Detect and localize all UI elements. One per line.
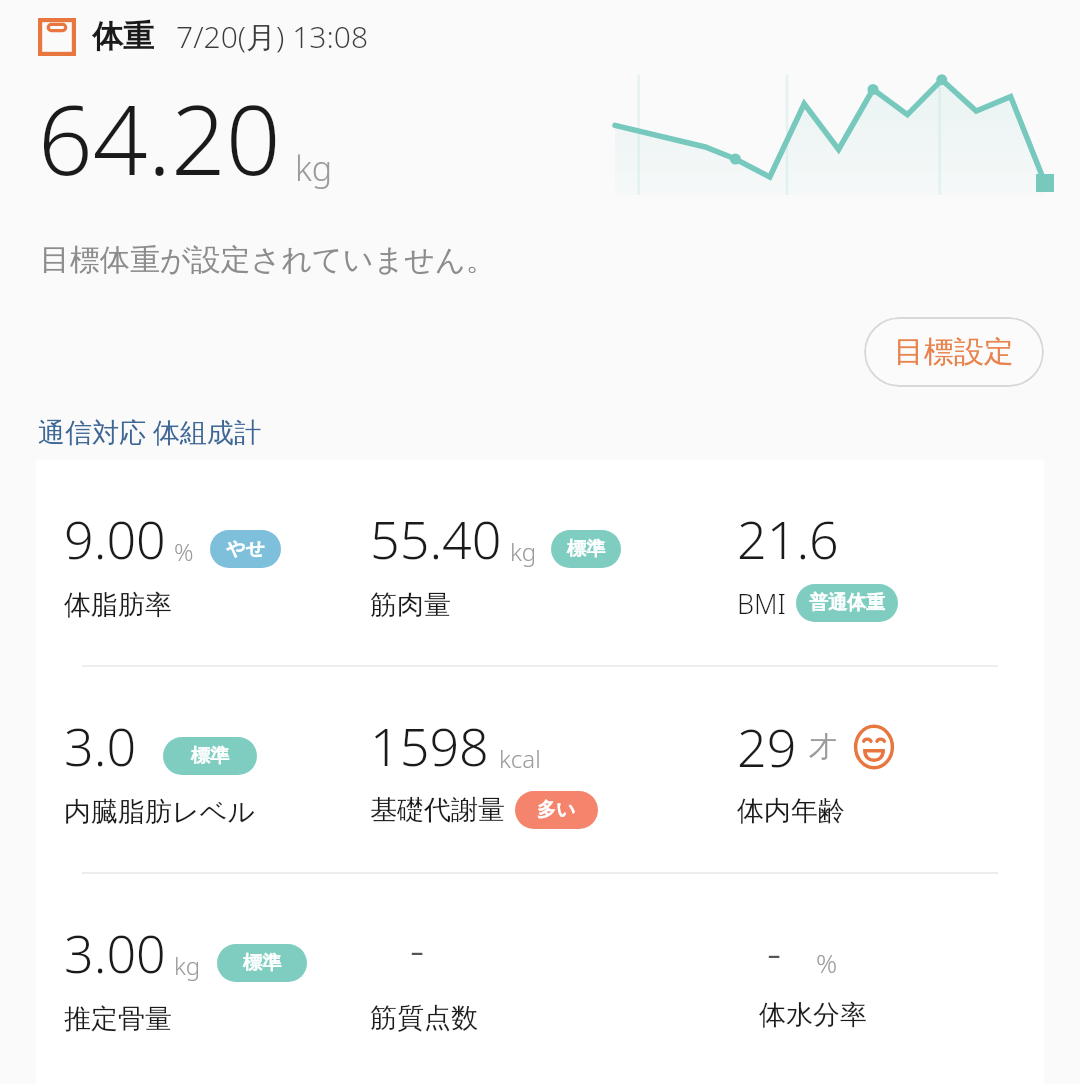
button[interactable]: 普通体重 [796, 584, 898, 622]
staticText: 9.00 [64, 503, 166, 574]
staticText: 筋肉量 [370, 588, 451, 622]
staticText: - [767, 922, 782, 982]
staticText: 基礎代謝量 [370, 793, 505, 827]
button[interactable]: 標準 [551, 530, 621, 568]
staticText: 体脂肪率 [64, 588, 172, 622]
staticText: 標準 [191, 744, 229, 768]
staticText: 才 [809, 729, 837, 764]
staticText: 64.20 [38, 72, 281, 203]
staticText: 内臓脂肪レベル [64, 795, 255, 829]
staticText: やせ [226, 537, 265, 561]
button[interactable]: 標準 [163, 737, 257, 775]
staticText: % [174, 535, 194, 568]
staticText: 1598 [370, 710, 489, 781]
other: Body age rating [851, 724, 897, 770]
staticText: 29 [737, 711, 797, 782]
staticText: 3.0 [64, 710, 137, 781]
button[interactable]: 9.00 [36, 460, 1044, 665]
button[interactable]: 多い [515, 791, 598, 829]
button[interactable]: 3.0 [36, 667, 1044, 872]
staticText: 多い [537, 798, 576, 822]
staticText: 55.40 [370, 503, 502, 574]
staticText: - [410, 919, 425, 979]
staticText: 通信対応 体組成計 [38, 413, 262, 450]
staticText: 体重 [92, 17, 154, 56]
staticText: 3.00 [64, 917, 166, 988]
staticText: 推定骨量 [64, 1002, 172, 1036]
staticText: 標準 [567, 537, 605, 561]
button[interactable]: やせ [210, 530, 281, 568]
staticText: 目標設定 [894, 333, 1014, 371]
staticText: 標準 [243, 951, 281, 975]
button[interactable]: 3.00 [36, 874, 1044, 1079]
staticText: 21.6 [737, 503, 839, 574]
staticText: 7/20(月) 13:08 [176, 16, 369, 57]
staticText: % [816, 945, 838, 980]
button[interactable]: 標準 [217, 944, 307, 982]
staticText: kcal [499, 742, 541, 775]
staticText: BMI [737, 585, 786, 622]
button[interactable]: 目標設定 [864, 317, 1044, 387]
staticText: 目標体重が設定されていません。 [40, 241, 496, 279]
staticText: kg [174, 949, 201, 982]
staticText: 体内年齢 [737, 794, 845, 828]
staticText: 普通体重 [809, 591, 885, 615]
staticText: kg [510, 535, 537, 568]
staticText: kg [295, 145, 333, 191]
staticText: 体水分率 [759, 998, 867, 1032]
staticText: 筋質点数 [370, 1001, 478, 1035]
